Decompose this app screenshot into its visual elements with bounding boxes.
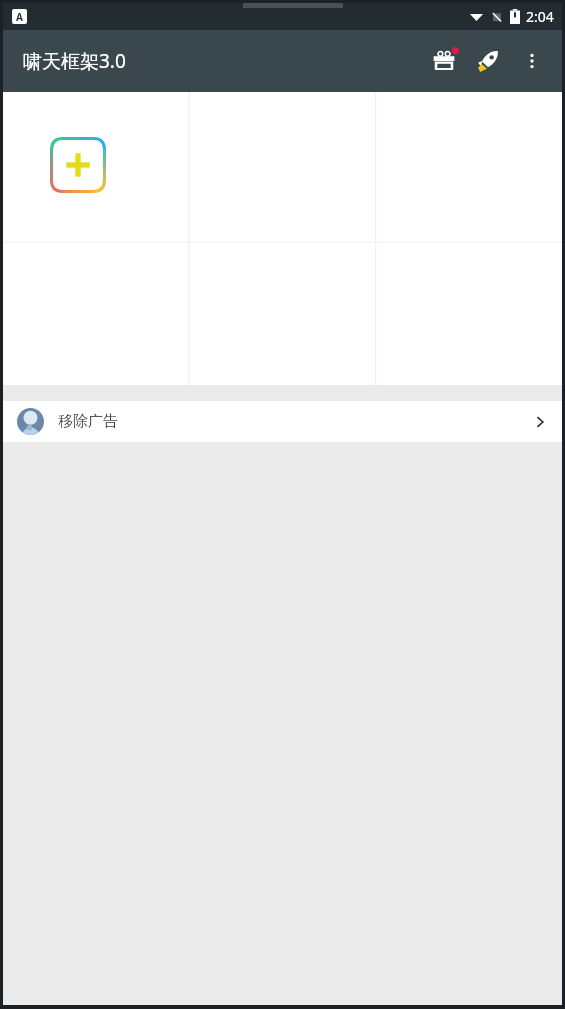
button[interactable]: Boost xyxy=(466,39,510,83)
staticText: A xyxy=(16,10,23,24)
staticText: 2:04 xyxy=(526,7,554,26)
button[interactable]: More options xyxy=(510,39,554,83)
staticText: 啸天框架3.0 xyxy=(23,48,126,74)
button[interactable]: Ad gift xyxy=(422,39,466,83)
button[interactable]: Add xyxy=(23,110,133,220)
staticText: 移除广告 xyxy=(58,412,532,431)
button[interactable]: 移除广告 xyxy=(3,401,562,442)
